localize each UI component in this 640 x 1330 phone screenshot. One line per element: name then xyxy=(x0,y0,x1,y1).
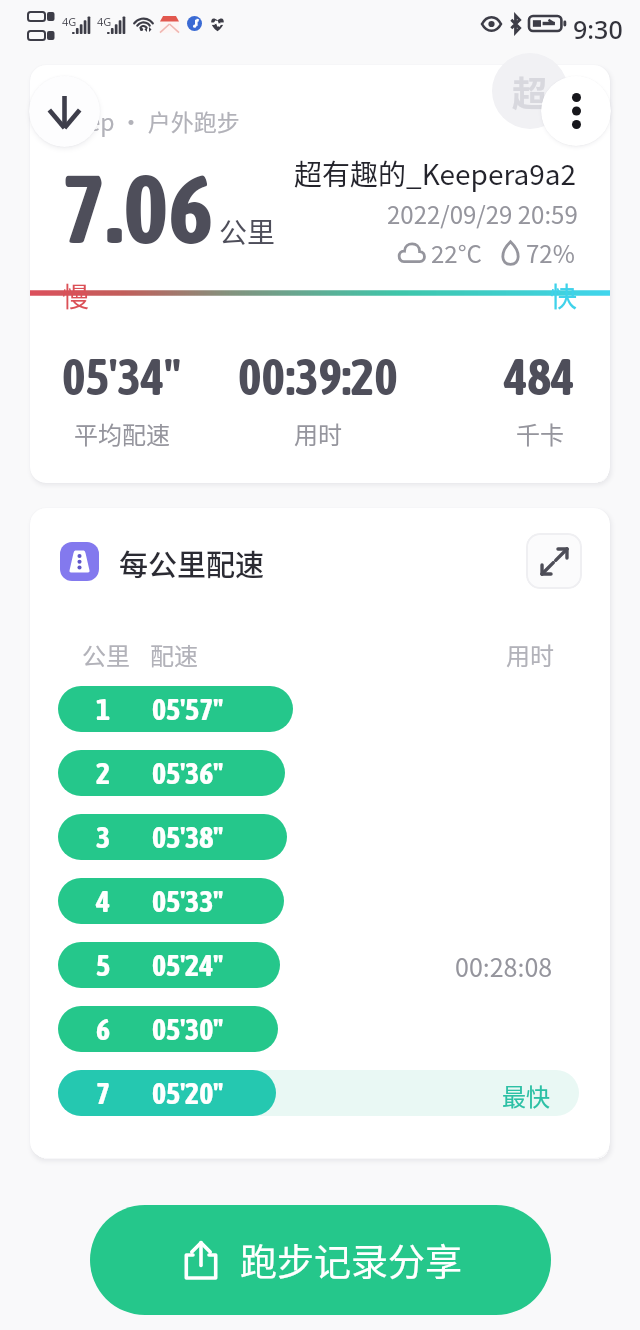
button[interactable]: More options xyxy=(541,76,611,146)
button[interactable]: 5 xyxy=(58,942,280,988)
staticText: 6 xyxy=(96,1012,111,1046)
staticText: 公里 xyxy=(82,637,130,672)
button[interactable]: Expand chart xyxy=(526,533,582,589)
staticText: 平均配速 xyxy=(74,416,170,451)
staticText: 配速 xyxy=(150,637,198,672)
staticText: 超有趣的_Keepera9a2 xyxy=(294,153,577,194)
staticText: 公里 xyxy=(219,211,276,252)
staticText: 9:30 xyxy=(573,12,623,46)
staticText: 05'36" xyxy=(152,756,224,790)
staticText: 72% xyxy=(526,235,575,270)
staticText: 05'57" xyxy=(152,692,224,726)
staticText: 05'24" xyxy=(152,948,224,982)
staticText: 22°C xyxy=(431,235,482,270)
staticText: 05'30" xyxy=(152,1012,224,1046)
staticText: 4 xyxy=(96,884,111,918)
staticText: 05'34" xyxy=(62,348,181,405)
staticText: 05'20" xyxy=(152,1076,224,1110)
staticText: 7.06 xyxy=(61,153,214,263)
button[interactable]: 7 xyxy=(58,1070,276,1116)
button[interactable]: Download xyxy=(29,76,100,147)
staticText: 1 xyxy=(96,692,111,726)
staticText: 快 xyxy=(550,276,577,312)
staticText: 千卡 xyxy=(516,416,564,451)
staticText: 2022/09/29 20:59 xyxy=(387,196,578,231)
staticText: 慢 xyxy=(62,276,89,312)
staticText: 484 xyxy=(504,348,575,405)
button[interactable]: 2 xyxy=(58,750,285,796)
staticText: 00:39:20 xyxy=(238,348,398,405)
staticText: 7 xyxy=(96,1076,111,1110)
staticText: 用时 xyxy=(506,637,554,672)
staticText: 2 xyxy=(96,756,111,790)
staticText: 5 xyxy=(96,948,111,982)
staticText: 超 xyxy=(512,66,548,117)
staticText: Keep · 户外跑步 xyxy=(60,104,240,137)
staticText: 00:28:08 xyxy=(455,948,553,984)
staticText: 4G xyxy=(62,14,77,29)
staticText: 用时 xyxy=(294,416,342,451)
staticText: 每公里配速 xyxy=(119,542,265,584)
staticText: 05'38" xyxy=(152,820,224,854)
staticText: 4G xyxy=(97,14,112,29)
button[interactable]: 跑步记录分享 xyxy=(90,1205,551,1315)
button[interactable]: 3 xyxy=(58,814,287,860)
button[interactable]: 1 xyxy=(58,686,293,732)
staticText: 跑步记录分享 xyxy=(240,1233,462,1287)
staticText: 最快 xyxy=(502,1078,550,1113)
button[interactable]: 4 xyxy=(58,878,284,924)
staticText: 05'33" xyxy=(152,884,224,918)
button[interactable]: 6 xyxy=(58,1006,278,1052)
staticText: 3 xyxy=(96,820,111,854)
